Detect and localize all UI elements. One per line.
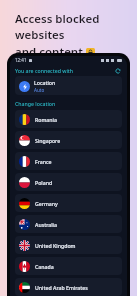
button[interactable]: Singapore xyxy=(15,131,122,149)
staticText: Access blocked websites xyxy=(15,11,127,43)
staticText: Auto xyxy=(34,87,45,93)
staticText: France xyxy=(35,158,52,165)
staticText: 12:41 xyxy=(15,57,27,63)
staticText: Singapore xyxy=(35,137,61,144)
staticText: Romania xyxy=(35,116,57,123)
staticText: United Kingdom xyxy=(35,242,76,249)
staticText: Germany xyxy=(35,200,58,207)
button[interactable]: Canada xyxy=(15,257,122,275)
staticText: United Arab Emirates xyxy=(35,284,88,291)
staticText: and content xyxy=(15,44,83,60)
button[interactable]: United Arab Emirates xyxy=(15,278,122,296)
button[interactable]: Romania xyxy=(15,110,122,128)
button[interactable]: Germany xyxy=(15,194,122,212)
button[interactable]: France xyxy=(15,152,122,170)
button[interactable]: Refresh xyxy=(113,66,122,75)
staticText: Location xyxy=(34,79,56,86)
staticText: Poland xyxy=(35,179,53,186)
staticText: Change location xyxy=(15,100,56,107)
staticText: You are connected with xyxy=(15,67,74,74)
button[interactable]: Australia xyxy=(15,215,122,233)
staticText: Australia xyxy=(35,221,57,228)
staticText: Canada xyxy=(35,263,54,270)
button[interactable]: Location xyxy=(15,76,122,95)
button[interactable]: United Kingdom xyxy=(15,236,122,254)
button[interactable]: Poland xyxy=(15,173,122,191)
